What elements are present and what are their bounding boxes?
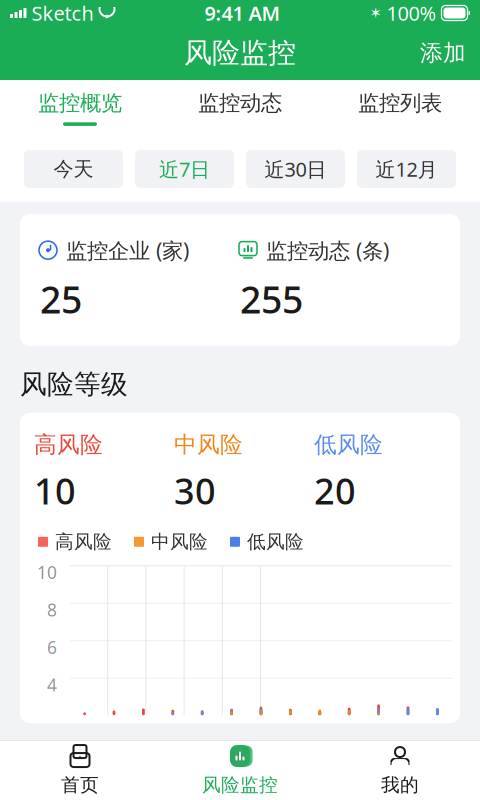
staticText: 添加 (420, 39, 466, 67)
staticText: 8 (47, 598, 57, 621)
staticText: 高风险 (34, 431, 103, 458)
staticText: 近30日 (264, 156, 326, 182)
button[interactable]: 监控概览 (0, 80, 160, 136)
staticText: 255 (240, 274, 303, 324)
staticText: 高风险 (55, 530, 112, 553)
staticText: 监控动态 (条) (266, 236, 389, 264)
button[interactable]: 近7日 (135, 150, 234, 188)
staticText: 10 (34, 466, 76, 514)
button[interactable]: 近12月 (357, 150, 456, 188)
button[interactable]: 监控动态 (160, 80, 320, 136)
staticText: 我的 (381, 773, 419, 796)
staticText: 低风险 (314, 431, 383, 458)
staticText: 近12月 (375, 156, 437, 182)
button[interactable]: 首页 (0, 741, 160, 800)
staticText: Sketch (31, 0, 93, 26)
staticText: 监控概览 (38, 90, 122, 116)
button[interactable]: 添加 (406, 29, 480, 77)
staticText: 9:41 AM (204, 0, 280, 26)
staticText: 近7日 (159, 156, 210, 182)
staticText: 今天 (53, 157, 93, 181)
button[interactable]: 近30日 (246, 150, 345, 188)
button[interactable]: 我的 (320, 741, 480, 800)
staticText: 4 (47, 673, 57, 696)
staticText: 30 (174, 466, 216, 514)
staticText: 低风险 (247, 530, 304, 553)
button[interactable]: 风险监控 (160, 741, 320, 800)
staticText: 25 (40, 274, 82, 324)
staticText: ✶ (369, 5, 381, 21)
staticText: 10 (37, 561, 57, 584)
staticText: 中风险 (174, 431, 243, 458)
staticText: 监控动态 (198, 90, 282, 116)
staticText: 监控企业 (家) (66, 236, 189, 264)
button[interactable]: 今天 (24, 150, 123, 188)
staticText: 风险监控 (184, 36, 296, 70)
staticText: 100% (386, 0, 436, 26)
staticText: 监控列表 (358, 90, 442, 116)
staticText: 中风险 (151, 530, 208, 553)
button[interactable]: 监控列表 (320, 80, 480, 136)
staticText: 6 (47, 636, 57, 659)
staticText: 风险等级 (20, 368, 128, 401)
staticText: 首页 (61, 773, 99, 796)
staticText: 20 (314, 466, 356, 514)
staticText: 风险监控 (202, 773, 278, 796)
